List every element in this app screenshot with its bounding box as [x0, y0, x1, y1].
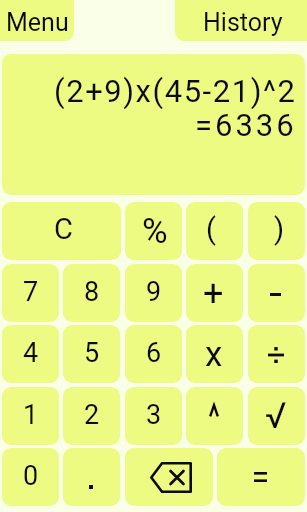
staticText: ) — [274, 212, 285, 246]
staticText: 9 — [146, 276, 162, 308]
button[interactable]: 7 — [2, 264, 59, 322]
button[interactable] — [217, 448, 305, 506]
button[interactable]: + — [186, 264, 243, 322]
staticText: 4 — [23, 337, 39, 369]
staticText: History — [203, 8, 283, 37]
staticText: =6336 — [195, 107, 297, 143]
staticText: Menu — [6, 8, 69, 37]
staticText: 6 — [146, 337, 162, 369]
staticText: x — [205, 334, 223, 375]
button[interactable]: 0 — [2, 448, 59, 506]
staticText: 0 — [23, 460, 39, 492]
button[interactable]: 2 — [63, 387, 120, 445]
button[interactable]: √ — [248, 387, 305, 445]
button[interactable]: x — [186, 325, 243, 383]
staticText: + — [203, 273, 224, 315]
button[interactable]: Menu — [0, 0, 74, 41]
button[interactable]: 5 — [63, 325, 120, 383]
button[interactable]: 6 — [125, 325, 182, 383]
button[interactable]: ) — [248, 202, 305, 260]
staticText: 5 — [84, 337, 100, 369]
button[interactable] — [248, 325, 305, 383]
staticText: % — [142, 211, 168, 252]
button[interactable]: 9 — [125, 264, 182, 322]
staticText: ( — [206, 212, 216, 246]
staticText: 1 — [23, 399, 39, 431]
staticText: 7 — [23, 276, 39, 308]
button[interactable]: 4 — [2, 325, 59, 383]
button[interactable] — [248, 264, 305, 322]
button[interactable] — [63, 448, 120, 506]
staticText: 8 — [84, 276, 100, 308]
staticText: (2+9)x(45-21)^2 — [54, 73, 297, 109]
staticText: 3 — [146, 399, 162, 431]
button[interactable]: ( — [186, 202, 243, 260]
button[interactable]: % — [125, 202, 182, 260]
button[interactable]: 8 — [63, 264, 120, 322]
button[interactable] — [125, 448, 213, 506]
button[interactable]: 1 — [2, 387, 59, 445]
button[interactable]: 3 — [125, 387, 182, 445]
staticText: 2 — [84, 399, 100, 431]
staticText: √ — [265, 395, 287, 437]
button[interactable]: History — [175, 0, 307, 41]
staticText: C — [54, 212, 73, 246]
button[interactable] — [186, 387, 243, 445]
button[interactable]: C — [2, 202, 121, 260]
